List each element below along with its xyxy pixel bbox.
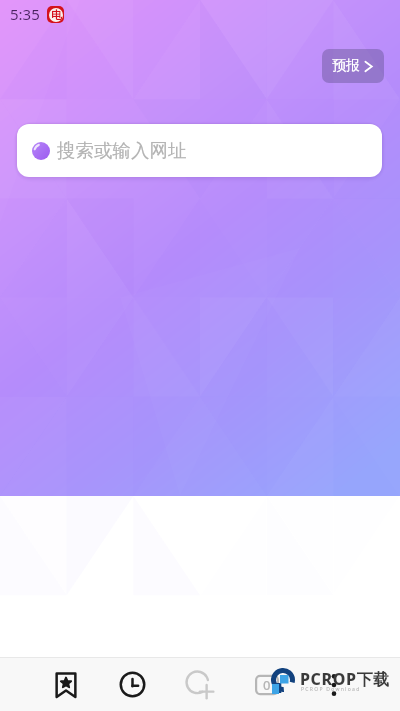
staticText: 搜索或输入网址 (57, 139, 187, 162)
button[interactable]: History (99, 658, 166, 711)
staticText: PCROP下载 (300, 668, 390, 690)
staticText: 5:35 (10, 4, 40, 24)
staticText: PCROP Download (301, 686, 361, 693)
button[interactable]: 搜索或输入网址 (17, 124, 382, 177)
staticText: 预报 (332, 57, 360, 75)
button[interactable]: Tabs (233, 658, 300, 711)
button[interactable]: Menu (300, 658, 367, 711)
staticText: 电 (51, 8, 62, 22)
staticText: 0 (263, 676, 271, 694)
button[interactable]: New tab (166, 658, 233, 711)
button[interactable]: 预报 (322, 49, 384, 83)
button[interactable]: Bookmarks (33, 658, 99, 711)
